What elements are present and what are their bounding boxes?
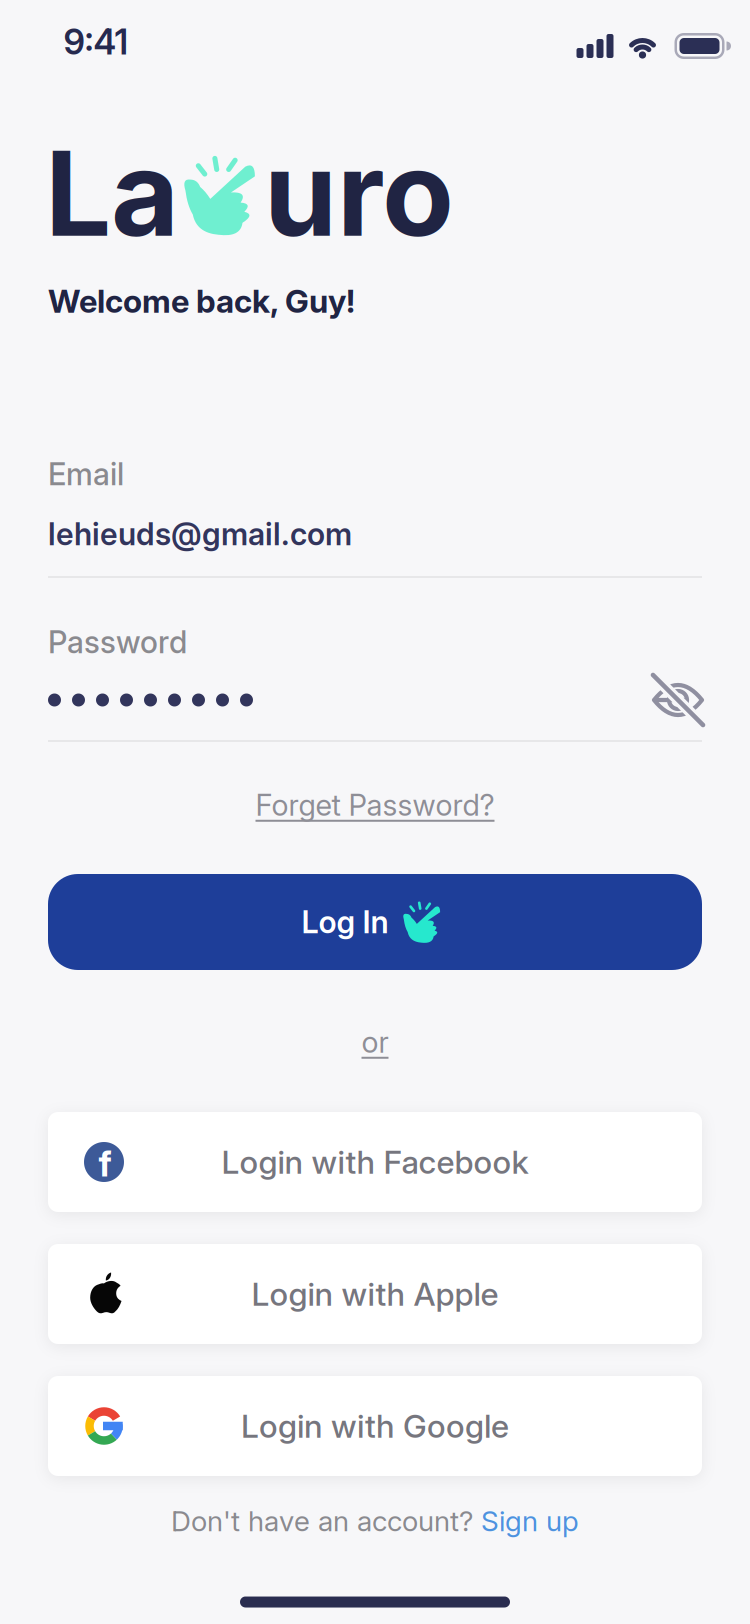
staticText: Forget Password? (255, 788, 494, 822)
staticText: lehieuds@gmail.com (48, 516, 352, 552)
button[interactable]: lehieuds@gmail.com (48, 516, 702, 552)
staticText: La (45, 124, 179, 262)
staticText: Login with Apple (251, 1275, 498, 1313)
staticText: or (361, 1025, 388, 1059)
button[interactable]: Show password (652, 674, 704, 726)
button[interactable]: Sign up (481, 1504, 579, 1537)
staticText: 9:41 (63, 22, 128, 62)
button[interactable]: Login with Facebook (48, 1112, 702, 1212)
staticText: Login with Facebook (221, 1143, 528, 1181)
staticText: uro (264, 124, 454, 262)
button[interactable]: Login with Google (48, 1376, 702, 1476)
staticText: Log In (301, 904, 388, 940)
staticText: Email (48, 456, 124, 492)
staticText: Sign up (481, 1504, 579, 1537)
staticText: f (98, 1144, 111, 1184)
button[interactable]: Login with Apple (48, 1244, 702, 1344)
staticText: Login with Google (241, 1407, 509, 1445)
button[interactable]: Log In (48, 874, 702, 970)
staticText: Welcome back, Guy! (48, 282, 355, 320)
staticText: Don't have an account? (171, 1504, 473, 1537)
button[interactable]: Forget Password? (255, 788, 494, 822)
staticText: Password (48, 624, 187, 660)
